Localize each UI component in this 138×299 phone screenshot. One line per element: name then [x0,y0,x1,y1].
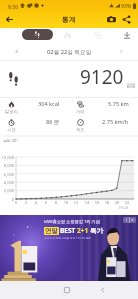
staticText: 10,000 [0,155,14,160]
staticText: 통계 [62,15,76,24]
button[interactable]: 칼로리 [0,98,69,111]
staticText: 14 [82,200,92,205]
staticText: 20 [112,200,122,205]
staticText: 22 [122,200,132,205]
staticText: 304 kcal [38,100,60,108]
button[interactable]: Home [62,285,72,295]
button[interactable]: 시간 [0,116,69,129]
staticText: 연말 [45,227,58,235]
staticText: 시간 [7,127,16,132]
staticText: 칼로리 [5,109,18,114]
button[interactable]: Back [98,285,108,295]
staticText: 구매 고객 전원 사은품 증정 / 무이자 할부 [44,236,92,240]
staticText: LIVE홈쇼핑 쇼핑랭킹 1위 기념 [44,219,100,225]
staticText: 9:50 [8,3,19,10]
staticText: 4,000 [0,180,14,185]
staticText: 거리 [76,109,85,114]
staticText: 2+1 [77,226,89,235]
button[interactable]: Camera [106,14,117,25]
button[interactable]: Steps tab [22,29,53,40]
staticText: 6,000 [0,172,14,177]
staticText: 2 [21,200,31,205]
staticText: 6 [41,200,51,205]
staticText: 4 [31,200,41,205]
staticText: 걸음 (회) [3,138,18,143]
staticText: 02월 22일 목요일 [47,48,92,56]
staticText: 0 [11,200,21,205]
staticText: (시간) [119,205,128,210]
button[interactable]: Next day [117,47,126,56]
staticText: 86 분 [46,118,60,126]
staticText: BEST [60,226,76,235]
staticText: 18 [102,200,112,205]
staticText: 8 [51,200,61,205]
staticText: 0 [0,197,14,202]
button[interactable]: Calories tab [63,31,72,40]
button[interactable]: 9120 [0,60,138,98]
button[interactable]: 거리 [69,98,138,111]
staticText: 걸음 [126,82,136,88]
button[interactable]: Advertisement [0,215,138,281]
button[interactable]: Distance tab [94,31,103,40]
button[interactable]: 속도 [69,116,138,129]
staticText: 2,000 [0,188,14,193]
staticText: 특가 [90,227,103,235]
staticText: 5.75 km [108,100,129,108]
staticText: 12 [71,200,81,205]
staticText: 속도 [76,127,85,132]
staticText: 8,000 [0,163,14,168]
staticText: 2.75 km/h [102,118,129,126]
staticText: 9120 [80,64,124,90]
button[interactable]: Close ad [123,217,136,223]
button[interactable]: Download [122,30,132,40]
staticText: 10 [61,200,71,205]
button[interactable]: Share [121,14,132,25]
staticText: 93% [121,2,132,9]
button[interactable]: Previous day [12,47,21,56]
staticText: 16 [92,200,102,205]
button[interactable]: Back [4,14,15,25]
